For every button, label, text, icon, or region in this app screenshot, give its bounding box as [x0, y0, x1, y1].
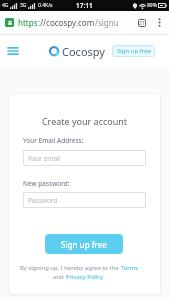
staticText: 21 [139, 20, 145, 27]
button[interactable]: More options [154, 17, 165, 28]
button[interactable]: Tabs [135, 16, 148, 29]
staticText: and [53, 273, 66, 281]
staticText: By signing up, I hereby agree to the [20, 264, 121, 272]
staticText: 89% [147, 2, 157, 9]
button[interactable]: Privacy Policy [66, 273, 104, 281]
button[interactable]: Your email [23, 150, 146, 166]
button[interactable]: Cocospy [49, 44, 105, 59]
staticText: Cocospy [62, 44, 105, 59]
staticText: 3G [20, 2, 27, 9]
staticText: Your Email Address: [23, 136, 84, 145]
staticText: Sign up free [61, 239, 107, 250]
button[interactable]: Password [23, 192, 146, 208]
staticText: Create your account [9, 115, 160, 127]
staticText: Password [28, 196, 58, 205]
staticText: New password: [23, 179, 70, 188]
staticText: 0.4K/s [38, 2, 53, 9]
staticText: ://cocospy.com [38, 17, 95, 28]
button[interactable]: Terms [121, 264, 138, 272]
staticText: Your email [28, 154, 61, 163]
staticText: 17:11 [76, 1, 93, 10]
button[interactable]: Sign up free [45, 234, 123, 254]
button[interactable]: Menu [6, 44, 20, 58]
button[interactable]: Sign up free [112, 45, 155, 57]
staticText: https [18, 17, 38, 28]
staticText: 4G [2, 2, 9, 9]
staticText: Sign up free [117, 47, 151, 55]
staticText: /signu [95, 17, 119, 28]
